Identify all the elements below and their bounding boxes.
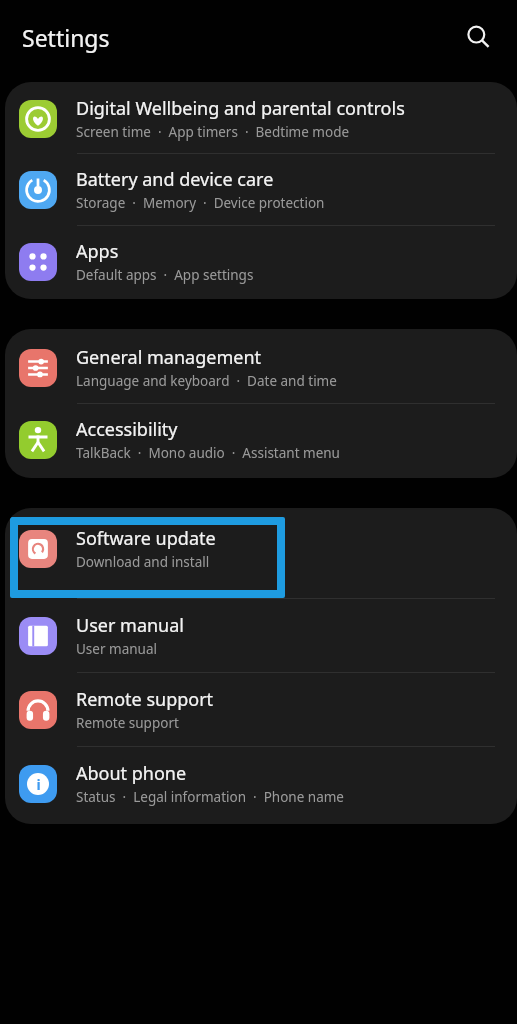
button[interactable]: Remote support: [5, 673, 517, 746]
staticText: Status · Legal information · Phone name: [76, 788, 344, 806]
staticText: Software update: [76, 526, 216, 551]
button[interactable]: i: [5, 747, 517, 824]
staticText: Language and keyboard · Date and time: [76, 372, 337, 390]
staticText: Screen time · App timers · Bedtime mode: [76, 123, 350, 141]
button[interactable]: Software update: [5, 508, 517, 585]
staticText: User manual: [76, 640, 157, 658]
staticText: i: [36, 775, 41, 794]
staticText: Apps: [76, 239, 119, 264]
staticText: Digital Wellbeing and parental controls: [76, 96, 405, 121]
button[interactable]: User manual: [5, 599, 517, 672]
button[interactable]: Digital Wellbeing and parental controls: [5, 82, 517, 153]
staticText: TalkBack · Mono audio · Assistant menu: [76, 444, 340, 462]
staticText: Accessibility: [76, 417, 178, 442]
staticText: Default apps · App settings: [76, 266, 254, 284]
staticText: Battery and device care: [76, 167, 274, 192]
staticText: Remote support: [76, 687, 214, 712]
staticText: Download and install: [76, 553, 210, 571]
staticText: General management: [76, 345, 262, 370]
staticText: Settings: [22, 22, 110, 53]
staticText: Storage · Memory · Device protection: [76, 194, 325, 212]
button[interactable]: Accessibility: [5, 404, 517, 478]
button[interactable]: General management: [5, 329, 517, 403]
staticText: Remote support: [76, 714, 179, 732]
button[interactable]: Battery and device care: [5, 154, 517, 225]
staticText: About phone: [76, 761, 187, 786]
button[interactable]: Apps: [5, 226, 517, 299]
button[interactable]: Search: [455, 14, 501, 60]
staticText: User manual: [76, 613, 184, 638]
